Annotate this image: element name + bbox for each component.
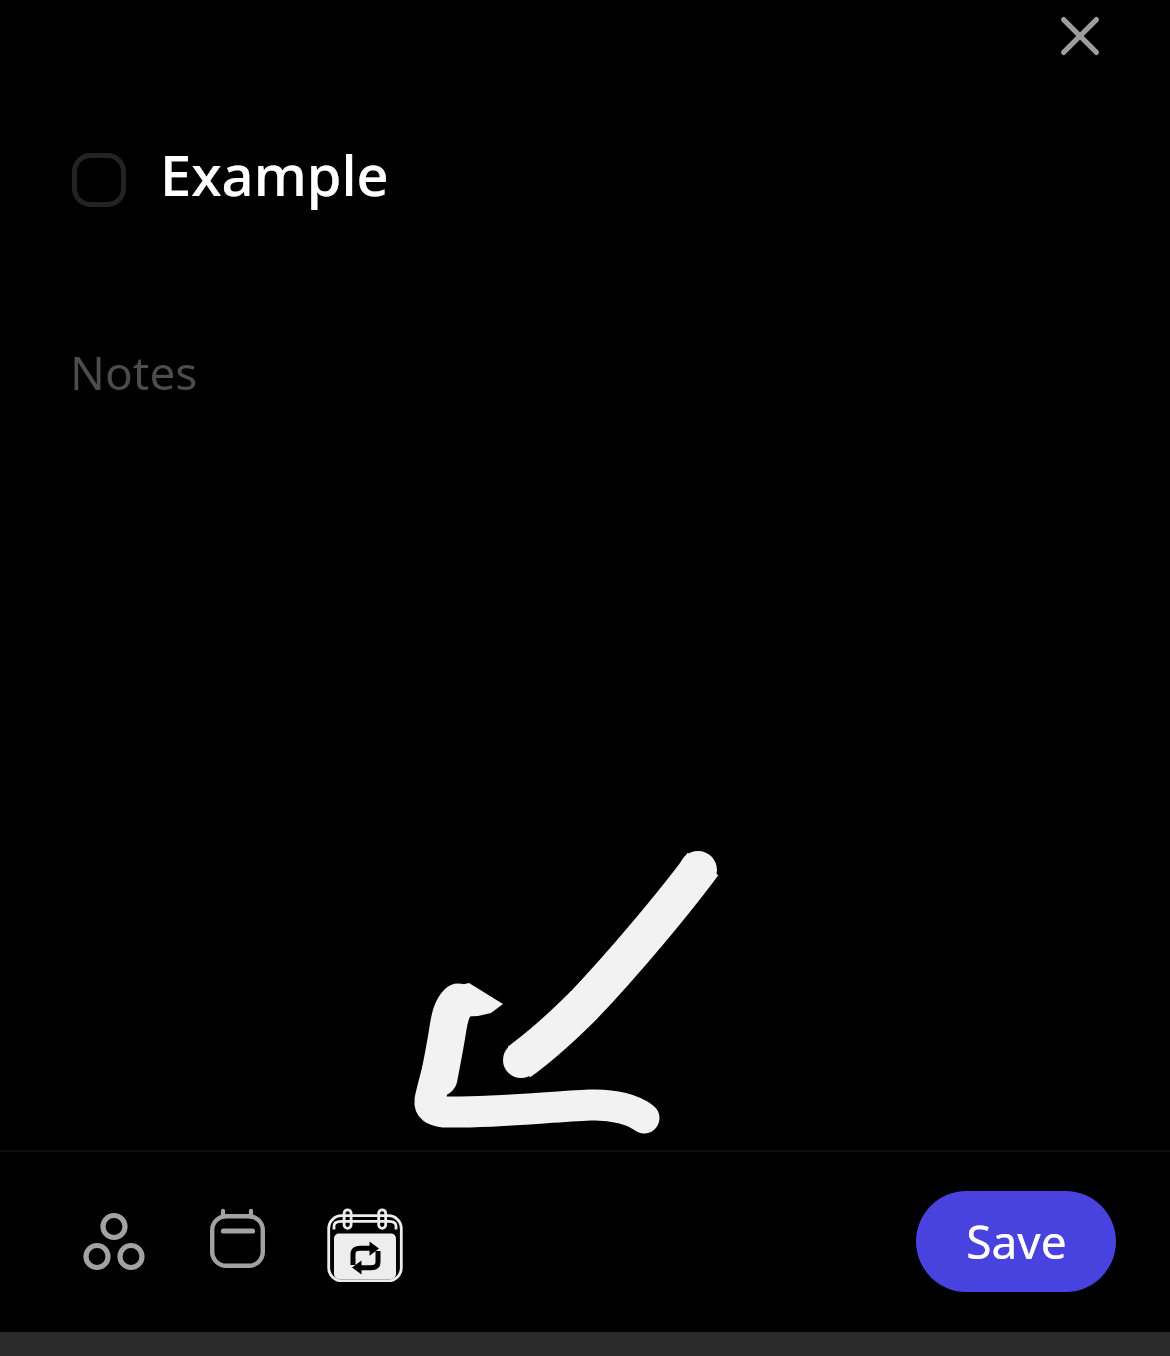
button[interactable]: Repeat	[319, 1199, 411, 1291]
staticText: Save	[966, 1210, 1067, 1273]
button[interactable]: Assignee	[68, 1196, 160, 1288]
button[interactable]: Due date	[193, 1194, 285, 1286]
button[interactable]: Mark complete	[60, 140, 138, 220]
staticText: Notes	[70, 341, 198, 404]
button[interactable]: Close	[1020, 0, 1140, 72]
staticText: Example	[160, 136, 389, 212]
button[interactable]: Save	[916, 1191, 1116, 1292]
